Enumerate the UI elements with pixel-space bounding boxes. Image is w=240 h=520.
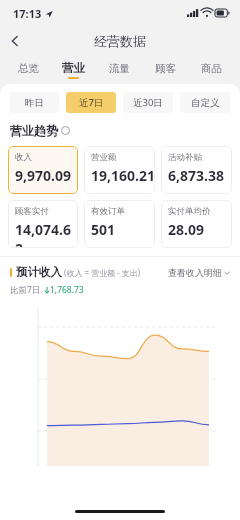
staticText: 9,970.09 xyxy=(15,166,71,185)
staticText: 实付单均价 xyxy=(168,206,211,217)
button[interactable]: 顾客实付 xyxy=(8,200,78,248)
staticText: 收入 xyxy=(15,152,32,163)
staticText: 19,160.21 xyxy=(91,166,155,185)
button[interactable]: 有效订单 xyxy=(84,200,155,248)
staticText: 流量 xyxy=(109,62,130,75)
button[interactable]: 总览 xyxy=(6,56,51,84)
staticText: 14,074.62 xyxy=(15,220,78,248)
button[interactable]: 商品 xyxy=(188,56,234,84)
staticText: 1,768.73 xyxy=(50,284,84,296)
staticText: 预计收入 xyxy=(16,265,62,279)
staticText: (收入 = 营业额 - 支出) xyxy=(64,267,141,278)
button[interactable]: 流量 xyxy=(96,56,142,84)
staticText: 比前7日 xyxy=(10,284,41,296)
staticText: 活动补贴 xyxy=(168,152,202,163)
staticText: 有效订单 xyxy=(91,206,125,217)
staticText: 6,873.38 xyxy=(168,166,224,185)
button[interactable]: 活动补贴 xyxy=(161,146,232,194)
button[interactable]: 自定义 xyxy=(180,92,230,113)
staticText: 经营数据 xyxy=(94,33,146,49)
button[interactable]: 查看收入明细 xyxy=(168,267,230,278)
button[interactable]: 顾客 xyxy=(142,56,188,84)
staticText: 近7日 xyxy=(79,96,104,109)
staticText: 顾客实付 xyxy=(15,206,49,217)
button[interactable]: 实付单均价 xyxy=(161,200,232,248)
button[interactable]: Back xyxy=(0,26,30,56)
button[interactable]: 营业 xyxy=(51,56,96,84)
button[interactable]: 近7日 xyxy=(66,92,116,113)
staticText: 营业 xyxy=(62,61,85,75)
staticText: 总览 xyxy=(18,62,39,75)
staticText: 营业趋势 xyxy=(10,123,58,138)
staticText: 近30日 xyxy=(133,96,163,109)
staticText: 顾客 xyxy=(155,62,176,75)
staticText: 查看收入明细 xyxy=(168,267,222,278)
staticText: 28.09 xyxy=(168,220,204,239)
button[interactable]: 昨日 xyxy=(10,92,59,113)
button[interactable]: 营业额 xyxy=(84,146,155,194)
button[interactable]: 近30日 xyxy=(123,92,173,113)
staticText: 昨日 xyxy=(25,97,44,109)
staticText: 营业额 xyxy=(91,152,117,163)
staticText: 商品 xyxy=(201,62,222,75)
staticText: 501 xyxy=(91,220,116,239)
staticText: 17:13 xyxy=(13,6,42,21)
button[interactable]: 收入 xyxy=(8,146,78,194)
staticText: 自定义 xyxy=(191,97,220,109)
